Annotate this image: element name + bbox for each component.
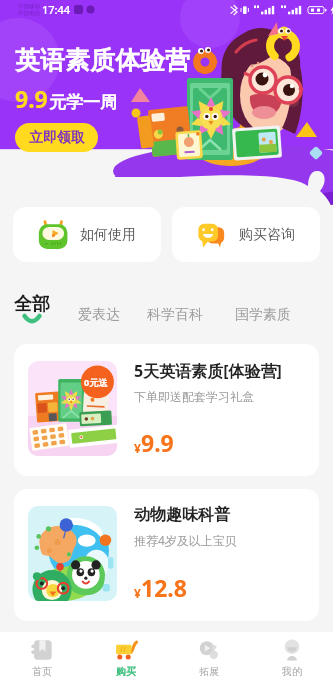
staticText: 12.8 [141,572,187,603]
staticText: 5天英语素质[体验营] [134,360,282,382]
staticText: 如何使用 [80,226,136,244]
staticText: 9.9 [15,83,48,114]
staticText: 立即领取 [29,129,85,147]
staticText: 9.9 [141,427,174,458]
button[interactable]: 国学素质 [235,306,291,324]
staticText: ¥ [134,585,141,601]
button[interactable]: 如何使用 [13,207,161,262]
other: 我的 [281,639,303,661]
staticText: 国学素质 [235,306,291,324]
staticText: 购买 [116,665,136,678]
staticText: 中国电信 [18,10,40,17]
button[interactable]: 购买咨询 [172,207,320,262]
button[interactable]: 购买 [84,632,167,684]
staticText: 0元送 [84,376,108,388]
staticText: 推荐4岁及以上宝贝 [134,532,237,548]
staticText: ¥ [134,440,141,456]
button[interactable]: 我的 [250,632,333,684]
staticText: 动物趣味科普 [134,505,230,525]
button[interactable]: 爱表达 [78,306,120,324]
staticText: 爱表达 [78,306,120,324]
button[interactable]: 全部 [14,293,50,324]
staticText: 科学百科 [147,306,203,324]
other: 拓展 [198,639,220,661]
staticText: 拓展 [199,665,219,678]
staticText: 购买咨询 [239,226,295,244]
other: 首页 [31,639,53,661]
staticText: 全部 [14,293,50,316]
staticText: 首页 [32,665,52,678]
button[interactable]: 立即领取 [15,123,98,152]
button[interactable]: 首页 [0,632,84,684]
staticText: 下单即送配套学习礼盒 [134,389,254,404]
staticText: 17:44 [42,2,71,17]
button[interactable]: 拓展 [167,632,250,684]
button[interactable]: 动物趣味科普 [14,489,319,621]
other: 购买 [115,639,137,661]
button[interactable]: 科学百科 [147,306,203,324]
staticText: 英语素质体验营 [15,45,190,76]
staticText: 我的 [282,665,302,678]
staticText: 中国移动 [18,3,40,10]
button[interactable]: 0元送 [14,344,319,476]
staticText: 元学一周 [49,92,117,113]
